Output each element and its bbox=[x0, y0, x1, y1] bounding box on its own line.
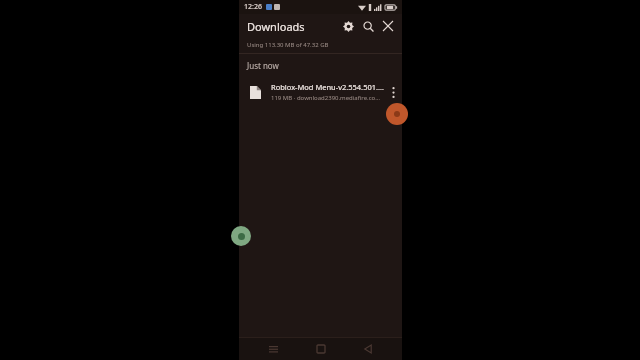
staticText: 119 MB · download2390.mediafire.co… bbox=[271, 94, 380, 102]
staticText: Roblox-Mod Menu-v2.554.501.zip bbox=[271, 82, 384, 92]
button[interactable]: Settings bbox=[338, 16, 358, 36]
button[interactable]: Search bbox=[358, 16, 378, 36]
button[interactable]: More options bbox=[386, 79, 400, 105]
button[interactable]: Home bbox=[308, 339, 334, 359]
staticText: Downloads bbox=[247, 19, 305, 34]
staticText: 12:26 bbox=[244, 2, 262, 12]
staticText: Just now bbox=[247, 60, 279, 71]
button[interactable]: Close bbox=[378, 16, 398, 36]
button[interactable]: Recents bbox=[260, 339, 286, 359]
staticText: Using 113.30 MB of 47.32 GB bbox=[247, 41, 329, 49]
button[interactable]: Roblox-Mod Menu-v2.554.501.zip bbox=[239, 76, 402, 108]
button[interactable]: Back bbox=[355, 339, 381, 359]
